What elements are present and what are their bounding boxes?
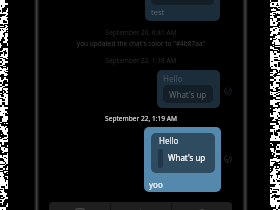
staticText: Hello	[163, 73, 183, 84]
button[interactable]: Hello	[157, 70, 220, 108]
button[interactable]: Attachment	[172, 202, 232, 210]
other: Message sent	[224, 87, 232, 95]
button[interactable]: test	[145, 0, 220, 21]
staticText: September 20, 6:41 AM	[38, 28, 244, 37]
staticText: test	[151, 7, 165, 17]
other: Attachment	[136, 206, 146, 210]
staticText: What's up	[169, 89, 207, 100]
staticText: you updated the chat's color to "#4b87aa…	[38, 39, 244, 48]
staticText: Hello	[159, 135, 179, 146]
other: Attachment	[197, 206, 207, 210]
other: Message sent	[224, 155, 232, 163]
other: Attachment	[75, 206, 85, 210]
staticText: yoo	[149, 179, 163, 190]
button[interactable]: Attachment	[49, 202, 110, 210]
staticText: What's up	[168, 152, 206, 163]
staticText: September 22, 1:18 AM	[38, 56, 244, 65]
staticText: September 22, 1:19 AM	[38, 114, 244, 123]
button[interactable]: Hello	[144, 127, 221, 192]
